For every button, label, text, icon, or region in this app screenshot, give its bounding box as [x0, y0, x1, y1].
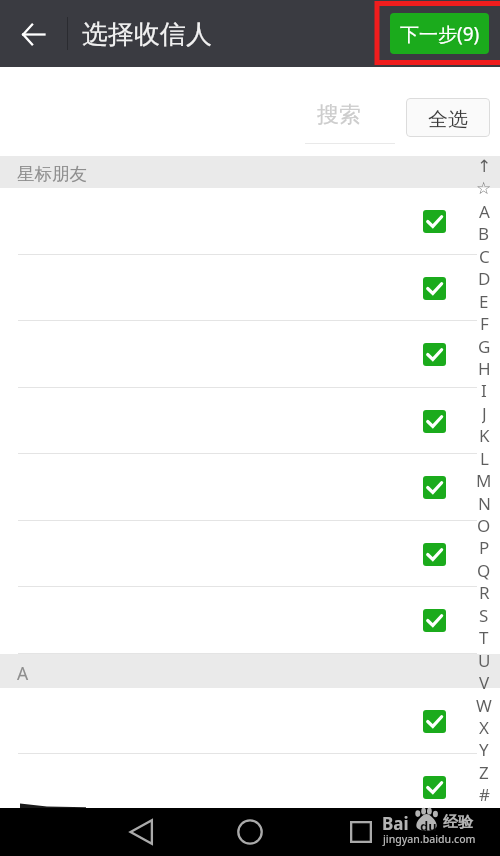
button[interactable]: Index P: [468, 536, 500, 558]
staticText: T: [479, 626, 489, 648]
button[interactable]: Selected: [0, 454, 500, 521]
staticText: ☆: [476, 178, 492, 198]
staticText: 选择收信人: [82, 18, 212, 51]
staticText: R: [479, 581, 490, 603]
button[interactable]: Index N: [468, 492, 500, 514]
staticText: U: [478, 649, 491, 671]
button[interactable]: Index E: [468, 290, 500, 312]
button[interactable]: Index X: [468, 716, 500, 738]
button[interactable]: Selected: [0, 188, 500, 255]
button[interactable]: Index Q: [468, 559, 500, 581]
button[interactable]: Index H: [468, 357, 500, 379]
button[interactable]: Index ↑: [468, 155, 500, 177]
staticText: L: [480, 447, 489, 469]
staticText: 星标朋友: [17, 163, 87, 185]
button[interactable]: Selected: [0, 587, 500, 654]
button[interactable]: Selected: [0, 688, 500, 755]
staticText: 搜索: [317, 101, 361, 129]
button[interactable]: Recents: [337, 808, 385, 856]
other: Selected: [423, 277, 446, 300]
staticText: A: [17, 661, 29, 685]
staticText: Y: [479, 738, 489, 760]
staticText: D: [478, 267, 491, 289]
button[interactable]: Index L: [468, 447, 500, 469]
button[interactable]: Index C: [468, 245, 500, 267]
button[interactable]: 全选: [406, 98, 490, 137]
button[interactable]: Selected: [0, 521, 500, 588]
button[interactable]: Index Z: [468, 761, 500, 783]
staticText: H: [478, 357, 491, 379]
button[interactable]: Index I: [468, 379, 500, 401]
staticText: B: [478, 222, 490, 244]
staticText: G: [478, 335, 491, 357]
button[interactable]: Index J: [468, 402, 500, 424]
button[interactable]: System back: [118, 808, 166, 856]
staticText: 经验: [443, 813, 473, 832]
staticText: S: [479, 604, 489, 626]
button[interactable]: 下一步(9): [390, 13, 489, 54]
button[interactable]: Index K: [468, 424, 500, 446]
button[interactable]: 搜索: [305, 97, 395, 143]
button[interactable]: Index G: [468, 335, 500, 357]
staticText: W: [476, 694, 492, 716]
other: Selected: [423, 476, 446, 499]
button[interactable]: Home: [226, 808, 274, 856]
staticText: K: [479, 424, 490, 446]
staticText: 下一步(9): [400, 21, 480, 47]
button[interactable]: Index #: [468, 783, 500, 805]
button[interactable]: Index U: [468, 649, 500, 671]
other: Selected: [423, 776, 446, 799]
staticText: X: [479, 716, 489, 738]
staticText: Q: [477, 559, 491, 581]
staticText: I: [481, 379, 487, 401]
button[interactable]: Index V: [468, 671, 500, 693]
staticText: ↑: [477, 156, 492, 176]
button[interactable]: Index M: [468, 469, 500, 491]
button[interactable]: Index D: [468, 267, 500, 289]
other: Selected: [423, 210, 446, 233]
staticText: E: [479, 290, 489, 312]
button[interactable]: Index W: [468, 694, 500, 716]
button[interactable]: Index O: [468, 514, 500, 536]
button[interactable]: Selected: [0, 821, 500, 856]
staticText: du: [420, 817, 437, 835]
button[interactable]: Index Y: [468, 738, 500, 760]
staticText: #: [479, 783, 490, 805]
button[interactable]: Back: [11, 12, 55, 56]
button[interactable]: Selected: [0, 321, 500, 388]
staticText: F: [480, 312, 489, 334]
button[interactable]: Index B: [468, 222, 500, 244]
button[interactable]: Selected: [0, 754, 500, 821]
other: Selected: [423, 543, 446, 566]
staticText: jingyan.baidu.com: [383, 832, 476, 846]
staticText: N: [478, 492, 491, 514]
staticText: P: [479, 536, 490, 558]
button[interactable]: Index A: [468, 200, 500, 222]
staticText: J: [482, 402, 487, 424]
other: Selected: [423, 710, 446, 733]
button[interactable]: Selected: [0, 255, 500, 322]
staticText: O: [477, 514, 491, 536]
staticText: 全选: [428, 107, 468, 132]
other: Selected: [423, 343, 446, 366]
button[interactable]: Index ☆: [468, 177, 500, 199]
button[interactable]: Selected: [0, 388, 500, 455]
button[interactable]: Index T: [468, 626, 500, 648]
button[interactable]: Index R: [468, 581, 500, 603]
other: Selected: [423, 609, 446, 632]
button[interactable]: Index S: [468, 604, 500, 626]
staticText: Bai: [382, 812, 409, 835]
staticText: Z: [479, 761, 489, 783]
staticText: V: [479, 671, 490, 693]
staticText: M: [476, 469, 492, 491]
staticText: A: [479, 200, 490, 222]
other: Selected: [423, 410, 446, 433]
button[interactable]: Index F: [468, 312, 500, 334]
staticText: C: [479, 245, 490, 267]
